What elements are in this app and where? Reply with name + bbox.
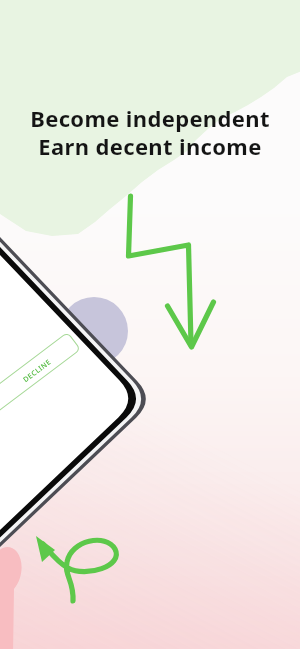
staticText: Become independent Earn decent income (30, 103, 270, 161)
staticText: DECLINE (21, 357, 54, 385)
button[interactable]: DECLINE (21, 357, 54, 385)
